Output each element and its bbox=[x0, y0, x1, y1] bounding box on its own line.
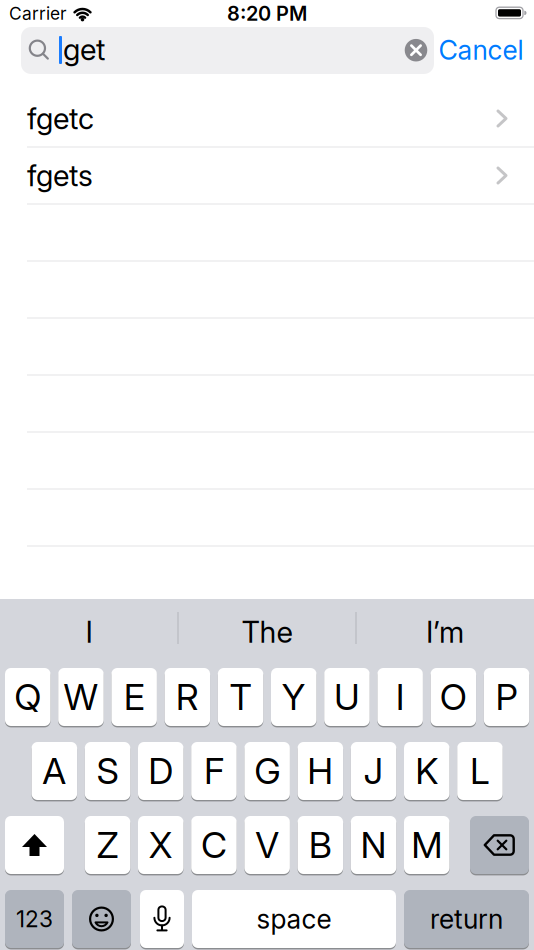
button[interactable]: fgetc bbox=[0, 90, 534, 147]
button[interactable]: Dictation bbox=[140, 890, 184, 948]
button[interactable]: C bbox=[191, 816, 237, 874]
button[interactable]: L bbox=[457, 742, 503, 800]
staticText: O bbox=[440, 676, 467, 718]
staticText: Y bbox=[282, 676, 306, 718]
staticText: T bbox=[230, 676, 252, 718]
button[interactable]: The bbox=[179, 598, 355, 666]
staticText: K bbox=[415, 750, 438, 792]
button[interactable]: Y bbox=[271, 668, 316, 726]
staticText: 123 bbox=[16, 906, 53, 932]
staticText: space bbox=[256, 903, 331, 935]
button[interactable]: G bbox=[244, 742, 290, 800]
staticText: R bbox=[176, 676, 199, 718]
button[interactable]: F bbox=[191, 742, 237, 800]
button[interactable]: B bbox=[298, 816, 343, 874]
staticText: H bbox=[307, 750, 333, 792]
staticText: F bbox=[204, 750, 224, 792]
button[interactable]: J bbox=[351, 742, 396, 800]
button[interactable]: return bbox=[404, 890, 529, 948]
staticText: S bbox=[96, 750, 118, 792]
button[interactable]: fgets bbox=[0, 147, 534, 204]
button[interactable]: I’m bbox=[357, 598, 533, 666]
staticText: M bbox=[411, 824, 442, 866]
button[interactable]: T bbox=[218, 668, 263, 726]
button[interactable]: P bbox=[484, 668, 529, 726]
button[interactable]: space bbox=[192, 890, 396, 948]
staticText: U bbox=[334, 676, 360, 718]
staticText: G bbox=[254, 750, 280, 792]
button[interactable]: Q bbox=[5, 668, 50, 726]
staticText: 8:20 PM bbox=[227, 2, 307, 25]
button[interactable]: Clear text bbox=[405, 39, 427, 61]
button[interactable]: Shift bbox=[5, 816, 64, 874]
staticText: get bbox=[63, 32, 105, 67]
staticText: J bbox=[364, 750, 384, 792]
button[interactable]: S bbox=[85, 742, 130, 800]
button[interactable]: I bbox=[1, 598, 177, 666]
staticText: I bbox=[396, 676, 405, 718]
staticText: D bbox=[148, 750, 173, 792]
button[interactable]: Search bbox=[21, 27, 434, 74]
button[interactable]: M bbox=[404, 816, 449, 874]
staticText: Z bbox=[96, 824, 118, 866]
button[interactable]: Numbers bbox=[5, 890, 64, 948]
button[interactable]: D bbox=[138, 742, 183, 800]
staticText: P bbox=[496, 676, 518, 718]
button[interactable]: H bbox=[298, 742, 343, 800]
button[interactable]: O bbox=[431, 668, 476, 726]
button[interactable]: Emoji bbox=[72, 890, 131, 948]
staticText: I’m bbox=[426, 615, 464, 649]
button[interactable]: Cancel bbox=[426, 26, 534, 73]
staticText: X bbox=[149, 824, 173, 866]
button[interactable]: A bbox=[32, 742, 77, 800]
button[interactable]: W bbox=[58, 668, 104, 726]
staticText: Cancel bbox=[438, 34, 523, 66]
button[interactable]: Z bbox=[85, 816, 130, 874]
staticText: The bbox=[241, 615, 292, 649]
button[interactable]: R bbox=[165, 668, 210, 726]
button[interactable]: X bbox=[138, 816, 183, 874]
staticText: W bbox=[63, 676, 98, 718]
button[interactable]: E bbox=[111, 668, 157, 726]
staticText: Q bbox=[14, 676, 41, 718]
staticText: fgets bbox=[27, 158, 93, 193]
button[interactable]: K bbox=[404, 742, 449, 800]
staticText: L bbox=[470, 750, 490, 792]
staticText: I bbox=[85, 615, 92, 649]
button[interactable]: U bbox=[324, 668, 370, 726]
staticText: C bbox=[201, 824, 227, 866]
staticText: fgetc bbox=[27, 101, 94, 136]
staticText: return bbox=[430, 903, 503, 935]
staticText: E bbox=[124, 676, 145, 718]
button[interactable]: I bbox=[377, 668, 423, 726]
button[interactable]: V bbox=[244, 816, 290, 874]
staticText: B bbox=[309, 824, 332, 866]
button[interactable]: N bbox=[351, 816, 396, 874]
staticText: V bbox=[255, 824, 279, 866]
staticText: A bbox=[42, 750, 66, 792]
staticText: N bbox=[361, 824, 387, 866]
staticText: Carrier bbox=[9, 3, 67, 24]
button[interactable]: Delete bbox=[470, 816, 529, 874]
